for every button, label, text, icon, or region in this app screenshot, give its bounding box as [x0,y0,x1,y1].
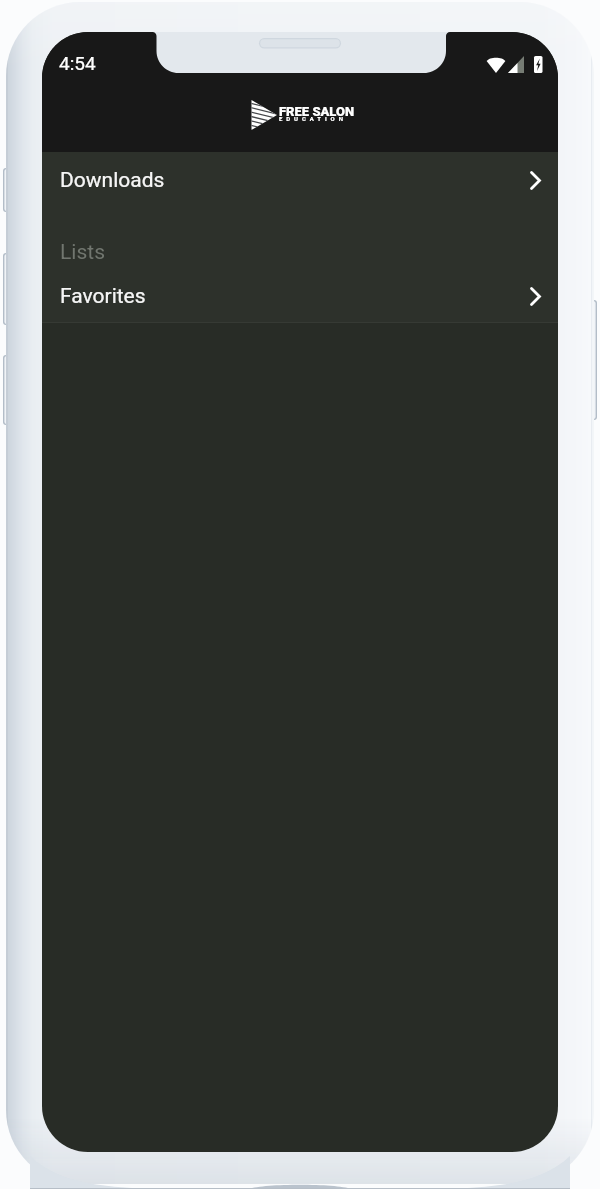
staticText: Favorites [60,284,146,309]
staticText: Lists [60,240,105,265]
other: Open Favorites [530,287,541,306]
button[interactable]: Favorites [42,270,558,322]
staticText: 4:54 [59,52,96,74]
button[interactable]: Downloads [42,154,558,206]
staticText: Downloads [60,168,165,193]
staticText: EDUCATION [279,115,347,122]
other: Open Downloads [530,171,541,190]
staticText: FREE SALON [279,104,355,119]
